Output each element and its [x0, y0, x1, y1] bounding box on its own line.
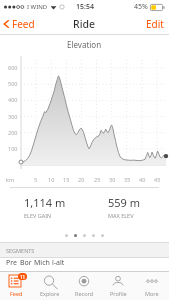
staticText: MAX ELEV: [108, 212, 134, 219]
staticText: Ride: [73, 17, 96, 31]
button[interactable]: Record: [67, 272, 101, 300]
staticText: 35: [124, 176, 131, 183]
button[interactable]: Feed: [0, 272, 33, 300]
other: More: [145, 275, 159, 289]
staticText: 500: [8, 80, 18, 87]
staticText: Mich: [34, 258, 50, 267]
staticText: 5: [34, 176, 38, 183]
button[interactable]: Profile: [101, 272, 135, 300]
staticText: Pre: [6, 258, 17, 267]
other: Profile: [111, 275, 125, 289]
staticText: ELEV GAIN: [24, 212, 52, 219]
staticText: 559 m: [108, 195, 141, 210]
staticText: 100: [8, 145, 18, 152]
staticText: 40: [139, 176, 146, 183]
staticText: 300: [8, 113, 18, 120]
staticText: Record: [75, 290, 94, 297]
staticText: km: [6, 176, 15, 183]
staticText: 11: [20, 274, 26, 280]
button[interactable]: Feed: [0, 14, 41, 34]
staticText: 400: [8, 96, 18, 103]
button[interactable]: Edit: [141, 14, 169, 34]
staticText: 20: [78, 176, 85, 183]
other: Feed: [7, 275, 27, 289]
other: Explore: [43, 275, 57, 289]
staticText: Elevation: [67, 39, 102, 50]
staticText: Bor: [20, 258, 32, 267]
staticText: Feed: [12, 17, 35, 31]
staticText: I WIND: [27, 3, 48, 11]
staticText: 15: [63, 176, 70, 183]
staticText: 600: [8, 64, 18, 71]
staticText: 30: [109, 176, 116, 183]
staticText: 45%: [134, 2, 148, 12]
staticText: 200: [8, 129, 18, 136]
other: Record: [77, 275, 91, 289]
staticText: Profile: [110, 290, 127, 297]
button[interactable]: Explore: [33, 272, 67, 300]
staticText: SEGMENTS: [6, 247, 35, 254]
staticText: l-alt: [52, 258, 65, 267]
staticText: 1,114 m: [24, 195, 66, 210]
staticText: 45: [154, 176, 161, 183]
staticText: Edit: [146, 17, 164, 31]
staticText: 10: [48, 176, 55, 183]
staticText: More: [145, 290, 159, 297]
staticText: 15:54: [76, 2, 94, 12]
staticText: Feed: [10, 290, 23, 297]
staticText: Explore: [40, 290, 60, 297]
button[interactable]: More: [135, 272, 169, 300]
staticText: 25: [94, 176, 101, 183]
